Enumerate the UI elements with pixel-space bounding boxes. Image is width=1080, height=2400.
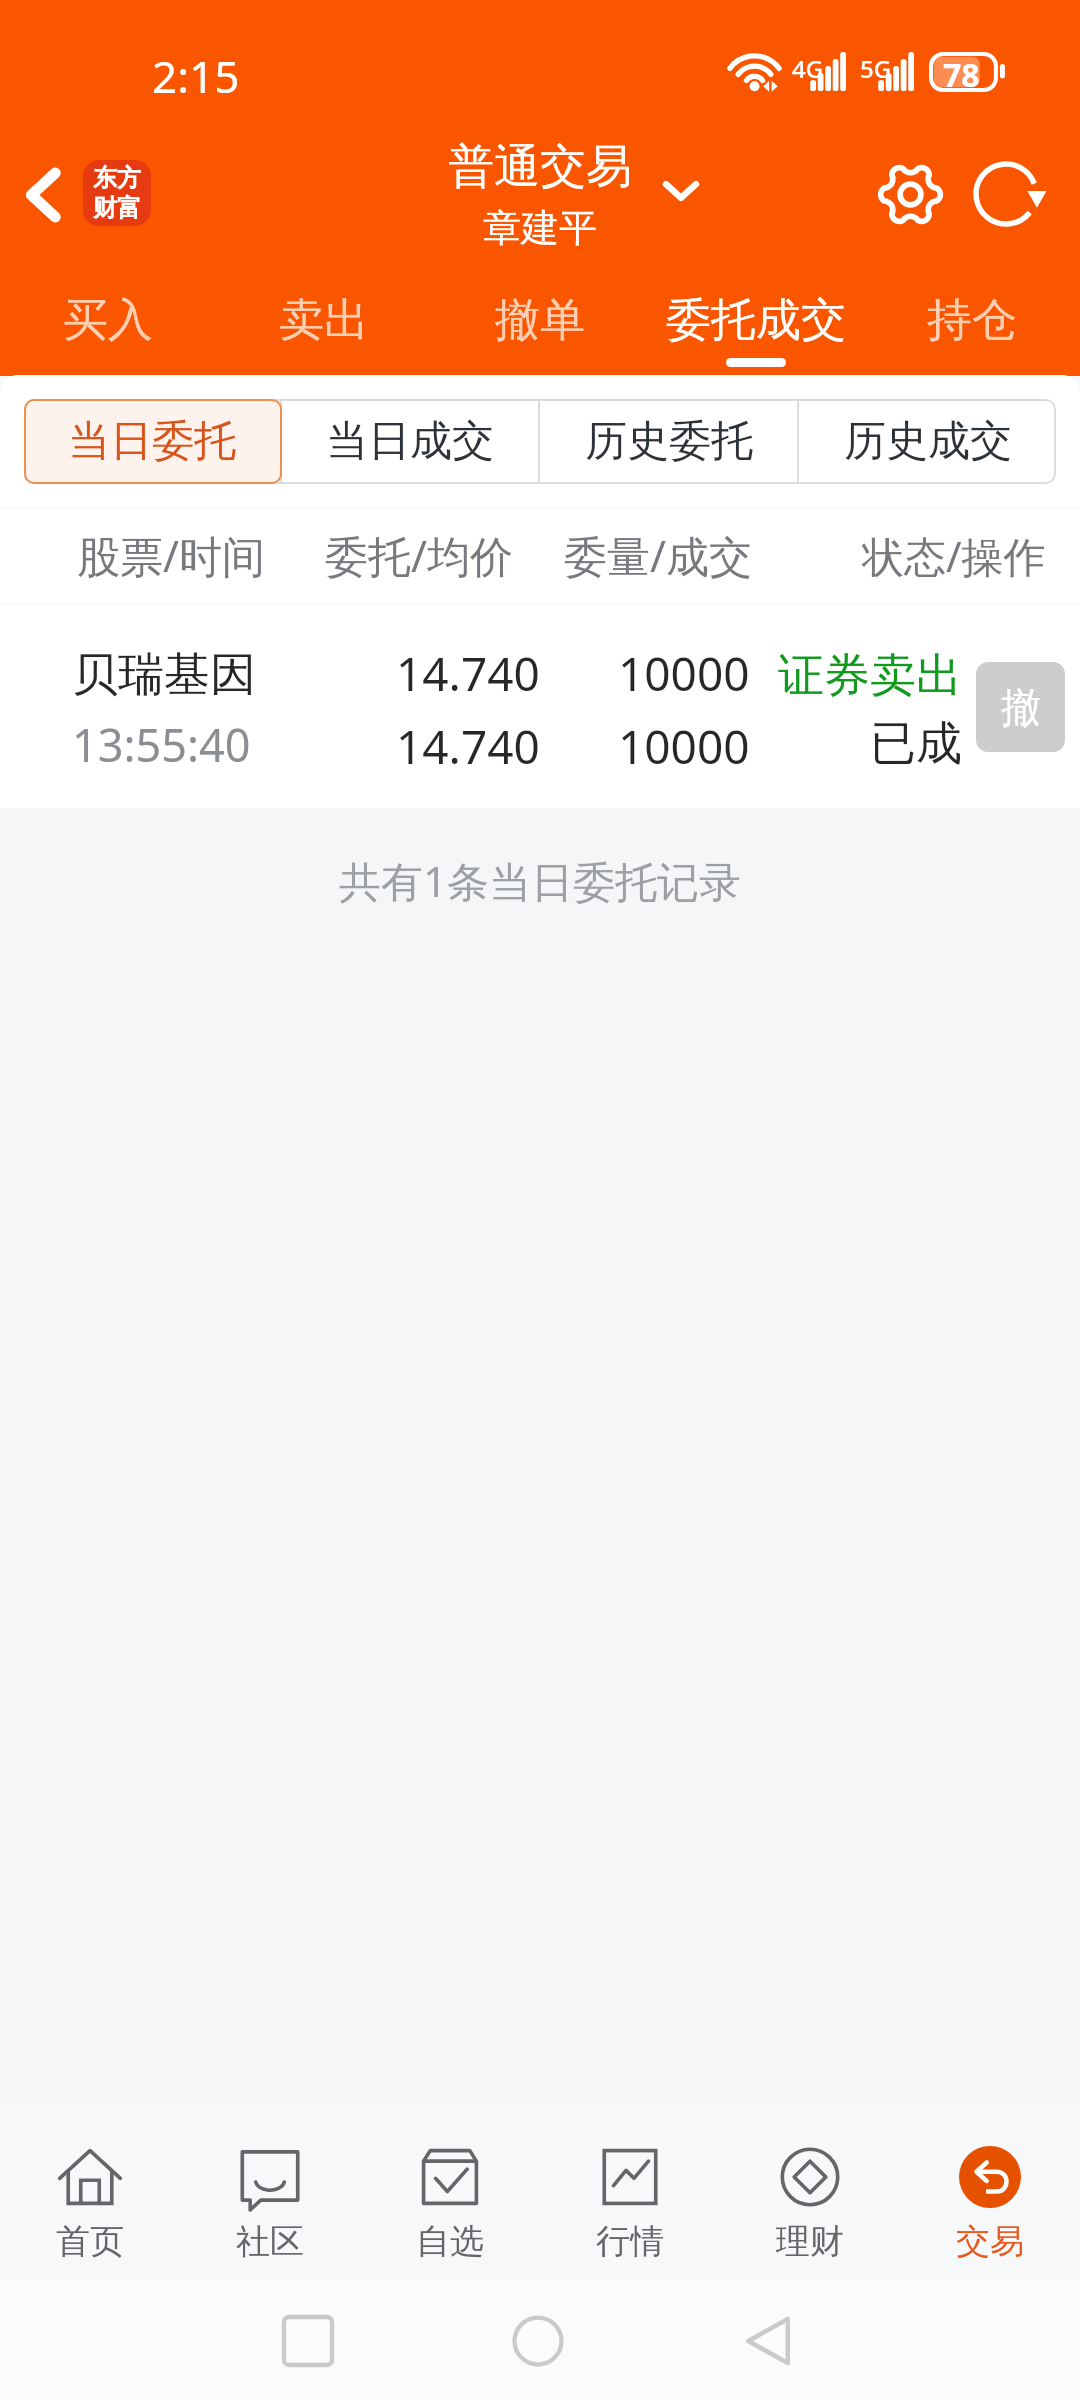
button[interactable]: 撤 [976, 662, 1065, 752]
staticText: 14.740 [396, 642, 540, 705]
button[interactable]: Switch account [652, 162, 710, 220]
staticText: 13:55:40 [72, 714, 251, 775]
staticText: 2:15 [152, 46, 240, 106]
button[interactable]: Refresh [962, 148, 1054, 240]
staticText: 普通交易 [448, 138, 632, 196]
staticText: 委托成交 [666, 292, 846, 349]
button[interactable]: 社区 [180, 2100, 360, 2280]
staticText: 状态/操作 [862, 527, 1046, 584]
staticText: 撤单 [495, 292, 585, 349]
button[interactable]: Back [8, 160, 78, 230]
button[interactable]: Eastmoney [83, 160, 151, 226]
staticText: 10000 [618, 642, 750, 705]
staticText: 78 [943, 53, 980, 93]
staticText: 共有1条当日委托记录 [339, 852, 742, 909]
staticText: 4G [792, 52, 824, 85]
staticText: 贝瑞基因 [72, 646, 256, 704]
staticText: 委托/均价 [325, 526, 513, 585]
staticText: 自选 [416, 2220, 484, 2263]
staticText: 委量/成交 [564, 526, 752, 585]
staticText: 当日成交 [326, 415, 494, 468]
button[interactable]: 行情 [540, 2100, 720, 2280]
staticText: 历史委托 [585, 415, 753, 468]
staticText: 章建平 [483, 204, 597, 252]
staticText: 证券卖出 [778, 647, 962, 705]
button[interactable]: Back [738, 2311, 798, 2371]
button[interactable]: 当日成交 [282, 399, 538, 484]
button[interactable]: 持仓 [864, 266, 1080, 376]
button[interactable]: 卖出 [216, 266, 432, 376]
button[interactable]: 首页 [0, 2100, 180, 2280]
staticText: 行情 [596, 2220, 664, 2263]
button[interactable]: Recents [278, 2311, 338, 2371]
staticText: 社区 [236, 2220, 304, 2263]
staticText: 交易 [956, 2220, 1024, 2263]
button[interactable]: 委托成交 [648, 266, 864, 376]
staticText: 已成 [870, 715, 962, 773]
staticText: 买入 [63, 292, 153, 349]
button[interactable]: Settings [864, 148, 956, 240]
button[interactable]: Home [508, 2311, 568, 2371]
button[interactable]: 买入 [0, 266, 216, 376]
button[interactable]: 交易 [900, 2100, 1080, 2280]
staticText: 财富 [93, 193, 141, 223]
staticText: 卖出 [279, 292, 369, 349]
button[interactable]: 理财 [720, 2100, 900, 2280]
button[interactable]: 普通交易 [448, 138, 632, 252]
staticText: 东方 [93, 163, 141, 193]
staticText: 5G [860, 52, 892, 85]
staticText: 当日委托 [68, 415, 236, 468]
button[interactable]: 自选 [360, 2100, 540, 2280]
staticText: 10000 [618, 715, 750, 778]
button[interactable]: 历史成交 [799, 399, 1056, 484]
staticText: 历史成交 [844, 415, 1012, 468]
button[interactable]: 历史委托 [540, 399, 797, 484]
staticText: 14.740 [396, 715, 540, 778]
button[interactable]: 撤单 [432, 266, 648, 376]
staticText: 撤 [1001, 682, 1041, 732]
button[interactable]: 贝瑞基因 [0, 604, 1080, 808]
button[interactable]: 当日委托 [24, 399, 280, 484]
staticText: 首页 [56, 2220, 124, 2263]
staticText: 持仓 [927, 292, 1017, 349]
staticText: 股票/时间 [77, 526, 265, 585]
staticText: 理财 [776, 2220, 844, 2263]
